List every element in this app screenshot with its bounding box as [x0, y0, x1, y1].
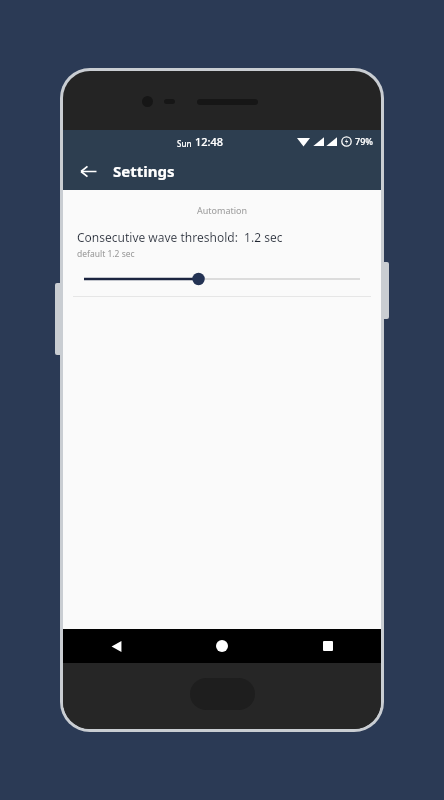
button[interactable]: Home [169, 629, 275, 663]
staticText: Automation [63, 204, 381, 216]
staticText: Sun [177, 138, 192, 149]
button[interactable]: Consecutive wave threshold: 1.2 sec [63, 229, 381, 296]
button[interactable]: Recent apps [275, 629, 381, 663]
staticText: Settings [113, 161, 175, 181]
button[interactable]: Back [71, 154, 105, 188]
staticText: 79% [355, 135, 373, 147]
button[interactable]: Back [63, 629, 169, 663]
button[interactable]: Consecutive wave threshold slider [77, 269, 367, 289]
staticText: Consecutive wave threshold: 1.2 sec [77, 229, 283, 245]
staticText: default 1.2 sec [77, 248, 135, 260]
staticText: 12:48 [195, 134, 224, 149]
